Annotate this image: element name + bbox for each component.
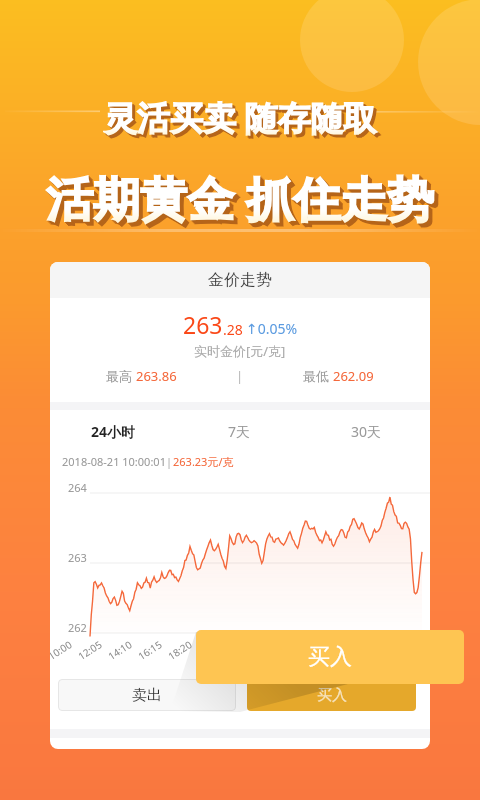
staticText: ↑0.05% <box>246 319 298 338</box>
staticText: 18:20 <box>165 637 195 663</box>
staticText: 最低 <box>303 367 333 385</box>
staticText: 金价走势 <box>208 270 272 290</box>
staticText: 263.23元/克 <box>173 454 234 469</box>
staticText: 262 <box>68 620 87 635</box>
staticText: 2018-08-21 10:00:01 <box>62 454 166 469</box>
staticText: 12:05 <box>75 637 105 663</box>
staticText: 264 <box>68 480 87 495</box>
button[interactable]: 24小时 <box>50 415 176 447</box>
staticText: 30天 <box>351 422 382 441</box>
staticText: 14:10 <box>105 637 135 663</box>
staticText: 卖出 <box>132 686 162 705</box>
staticText: 263 <box>68 550 87 565</box>
button[interactable]: 7天 <box>176 415 303 447</box>
staticText: 24小时 <box>91 422 136 441</box>
staticText: 活期黄金 抓住走势 <box>48 168 437 232</box>
staticText: 实时金价[元/克] <box>194 342 286 360</box>
staticText: 买入 <box>308 643 352 671</box>
button[interactable]: 买入 <box>247 679 416 711</box>
staticText: 买入 <box>317 686 347 705</box>
staticText: 活期黄金 抓住走势 <box>47 167 436 231</box>
staticText: 活期黄金 抓住走势 <box>46 166 435 230</box>
button[interactable]: 30天 <box>303 415 430 447</box>
staticText: 263.86 <box>136 367 177 385</box>
staticText: .28 <box>223 320 243 339</box>
staticText: | <box>166 454 173 469</box>
staticText: 02:40 <box>285 637 315 663</box>
staticText: 活期黄金 抓住走势 <box>50 170 439 234</box>
staticText: 10:00 <box>50 637 75 663</box>
staticText: 20:25 <box>195 637 225 663</box>
staticText: 灵活买卖 随存随取 <box>107 98 380 143</box>
staticText: 灵活买卖 随存随取 <box>104 95 377 140</box>
button[interactable]: 卖出 <box>58 679 236 711</box>
staticText: | <box>236 367 244 385</box>
staticText: 7天 <box>228 422 251 441</box>
staticText: 263 <box>183 309 223 340</box>
staticText: 262.09 <box>333 367 374 385</box>
button[interactable]: 买入 <box>196 630 464 684</box>
staticText: 活期黄金 抓住走势 <box>49 169 438 233</box>
staticText: 最高 <box>106 367 136 385</box>
staticText: 灵活买卖 随存随取 <box>106 97 379 142</box>
staticText: 16:15 <box>135 637 165 663</box>
